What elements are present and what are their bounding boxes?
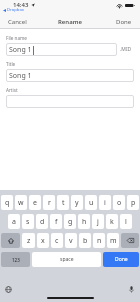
button[interactable]: e <box>29 195 41 210</box>
staticText: w <box>18 198 24 208</box>
button[interactable]: Backspace <box>121 233 139 248</box>
staticText: 14:43 <box>13 1 29 9</box>
staticText: z <box>27 236 31 246</box>
button[interactable]: 123 <box>1 252 30 267</box>
button[interactable]: Cancel <box>0 15 35 29</box>
button[interactable]: v <box>65 233 77 248</box>
button[interactable]: c <box>51 233 63 248</box>
staticText: Song 1 <box>9 45 32 55</box>
staticText: h <box>82 217 87 227</box>
button[interactable]: Song 1 <box>6 43 117 56</box>
staticText: space <box>60 256 74 263</box>
button[interactable]: n <box>93 233 105 248</box>
staticText: f <box>55 217 58 227</box>
button[interactable]: d <box>36 214 48 229</box>
staticText: m <box>110 236 117 246</box>
button[interactable] <box>6 95 134 108</box>
button[interactable]: k <box>106 214 118 229</box>
button[interactable]: u <box>85 195 97 210</box>
button[interactable]: w <box>15 195 27 210</box>
staticText: Done <box>115 256 128 263</box>
staticText: u <box>89 198 94 208</box>
staticText: Rename <box>58 18 82 26</box>
button[interactable]: a <box>8 214 20 229</box>
staticText: j <box>97 217 99 227</box>
staticText: t <box>62 198 65 208</box>
button[interactable]: t <box>57 195 69 210</box>
staticText: d <box>40 217 45 227</box>
button[interactable]: Done <box>108 15 140 29</box>
staticText: r <box>48 198 51 208</box>
staticText: q <box>5 198 10 208</box>
staticText: Title <box>6 61 16 67</box>
button[interactable]: x <box>37 233 49 248</box>
staticText: Cancel <box>8 18 27 26</box>
button[interactable]: q <box>1 195 13 210</box>
button[interactable]: f <box>50 214 62 229</box>
button[interactable]: h <box>78 214 90 229</box>
button[interactable]: s <box>22 214 34 229</box>
button[interactable]: o <box>113 195 125 210</box>
staticText: s <box>26 217 30 227</box>
staticText: n <box>97 236 102 246</box>
staticText: a <box>12 217 16 227</box>
button[interactable]: b <box>79 233 91 248</box>
button[interactable]: space <box>32 252 101 267</box>
staticText: Dropbox <box>7 7 25 13</box>
button[interactable]: Change keyboard <box>5 286 12 293</box>
staticText: File name <box>6 35 27 41</box>
button[interactable]: Song 1 <box>6 69 134 82</box>
button[interactable]: Done <box>103 252 139 267</box>
staticText: g <box>68 217 73 227</box>
button[interactable]: p <box>127 195 139 210</box>
button[interactable]: l <box>120 214 132 229</box>
staticText: c <box>55 236 59 246</box>
staticText: 123 <box>12 257 20 263</box>
staticText: y <box>75 198 79 208</box>
staticText: x <box>41 236 45 246</box>
staticText: .MID <box>120 46 132 53</box>
button[interactable]: z <box>22 233 35 248</box>
button[interactable]: i <box>99 195 111 210</box>
button[interactable]: m <box>107 233 119 248</box>
staticText: i <box>104 198 106 208</box>
staticText: b <box>83 236 88 246</box>
staticText: l <box>125 217 127 227</box>
button[interactable]: j <box>92 214 104 229</box>
button[interactable]: Shift <box>1 233 20 248</box>
staticText: o <box>117 198 122 208</box>
button[interactable]: g <box>64 214 76 229</box>
button[interactable]: y <box>71 195 83 210</box>
staticText: e <box>33 198 37 208</box>
staticText: Artist <box>6 87 18 93</box>
staticText: v <box>69 236 73 246</box>
button[interactable]: Dictation <box>129 286 134 293</box>
staticText: k <box>110 217 114 227</box>
button[interactable]: r <box>43 195 55 210</box>
staticText: Song 1 <box>9 71 32 81</box>
staticText: p <box>131 198 136 208</box>
staticText: Done <box>116 18 132 26</box>
